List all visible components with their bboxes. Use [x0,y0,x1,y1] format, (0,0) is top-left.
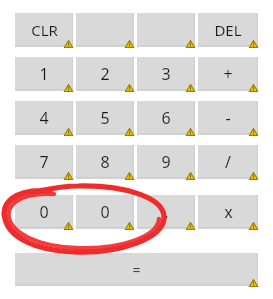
button[interactable]: 8 [76,145,134,178]
staticText: 3 [161,63,171,85]
staticText: 2 [100,63,110,85]
staticText: 0 [39,201,49,223]
staticText: 0 [100,201,110,223]
staticText: 8 [100,151,110,173]
button[interactable]: 7 [15,145,73,178]
staticText: + [223,63,233,85]
button[interactable]: x [198,195,258,228]
staticText: . [164,201,169,223]
button[interactable]: 0 [76,195,134,228]
button[interactable]: CLR [15,13,73,46]
button[interactable]: / [198,145,258,178]
button[interactable]: + [198,57,258,90]
staticText: CLR [31,20,58,40]
button[interactable]: 0 [15,195,73,228]
staticText: DEL [214,20,242,40]
button[interactable]: DEL [198,13,258,46]
staticText: = [132,260,141,279]
button[interactable]: - [198,101,258,134]
staticText: 4 [39,107,49,129]
button[interactable]: 5 [76,101,134,134]
button[interactable]: 1 [15,57,73,90]
staticText: 9 [161,151,171,173]
button[interactable]: . [137,195,195,228]
staticText: 5 [100,107,110,129]
staticText: 6 [161,107,171,129]
staticText: - [225,107,231,129]
staticText: 7 [39,151,49,173]
button[interactable]: 4 [15,101,73,134]
staticText: 1 [39,63,49,85]
staticText: x [224,201,233,223]
button[interactable]: 3 [137,57,195,90]
button[interactable]: Blank key [76,13,134,46]
button[interactable]: 6 [137,101,195,134]
button[interactable]: Blank key [137,13,195,46]
button[interactable]: 2 [76,57,134,90]
staticText: / [225,151,231,173]
button[interactable]: 9 [137,145,195,178]
button[interactable]: = [15,253,258,285]
